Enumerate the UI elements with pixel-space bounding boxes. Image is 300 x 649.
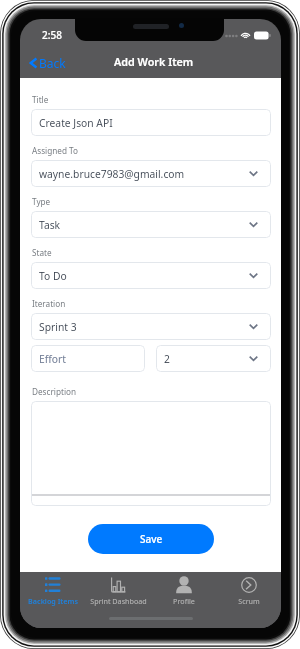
staticText: Effort — [39, 352, 67, 366]
button[interactable]: Scrum — [216, 572, 281, 628]
staticText: Save — [140, 532, 163, 546]
button[interactable]: Task — [31, 211, 271, 238]
other: Backlog Items — [45, 577, 61, 592]
staticText: To Do — [39, 269, 67, 283]
button[interactable]: Profile — [151, 572, 216, 628]
staticText: wayne.bruce7983@gmail.com — [39, 167, 185, 181]
staticText: Type — [32, 196, 51, 207]
staticText: Profile — [173, 596, 195, 606]
staticText: Sprint 3 — [39, 320, 77, 334]
staticText: Backlog Items — [28, 596, 78, 606]
staticText: 2:58 — [42, 28, 62, 42]
button[interactable]: 2 — [156, 345, 271, 372]
staticText: Task — [39, 218, 61, 232]
button[interactable]: Back — [27, 52, 69, 74]
staticText: Title — [32, 94, 49, 105]
button[interactable]: Sprint Dashboard — [86, 572, 151, 628]
button[interactable]: Sprint 3 — [31, 313, 271, 340]
staticText: Back — [39, 55, 66, 71]
staticText: Create Json API — [39, 116, 113, 130]
other: Profile — [176, 576, 192, 594]
button[interactable]: To Do — [31, 262, 271, 289]
staticText: Iteration — [32, 298, 66, 309]
staticText: State — [32, 247, 52, 258]
staticText: Scrum — [238, 596, 260, 606]
other: Sprint Dashboard — [111, 577, 126, 593]
staticText: Add Work Item — [114, 54, 194, 69]
button[interactable] — [31, 401, 271, 506]
button[interactable]: Backlog Items — [20, 572, 86, 628]
staticText: Assigned To — [32, 145, 78, 156]
button[interactable]: Save — [88, 524, 214, 554]
button[interactable]: Effort — [31, 345, 145, 372]
other: Scrum — [241, 577, 257, 593]
button[interactable]: wayne.bruce7983@gmail.com — [31, 160, 271, 187]
staticText: Description — [32, 386, 77, 397]
staticText: 2 — [164, 352, 170, 366]
button[interactable]: Create Json API — [31, 109, 271, 136]
staticText: Sprint Dashboad — [90, 596, 147, 606]
